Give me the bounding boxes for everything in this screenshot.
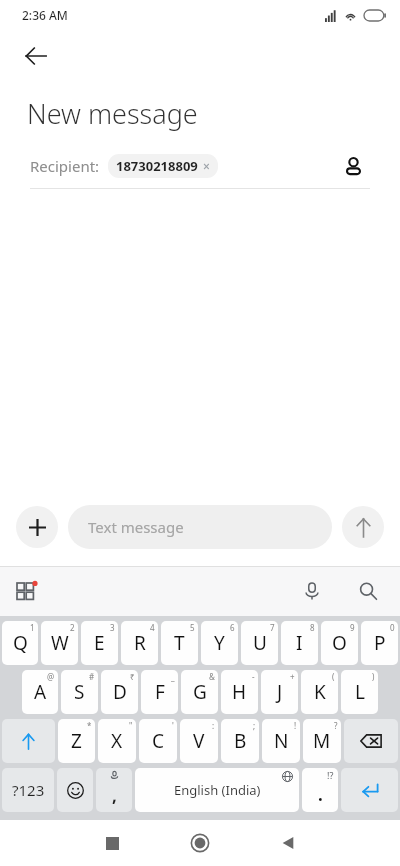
staticText: @ — [47, 671, 55, 682]
button[interactable]: K — [301, 670, 338, 714]
button[interactable]: U — [241, 621, 278, 665]
button[interactable]: , — [96, 768, 132, 812]
staticText: New message — [27, 95, 198, 132]
button[interactable]: X — [98, 719, 136, 763]
staticText: 5 — [190, 622, 195, 633]
button[interactable]: M — [303, 719, 341, 763]
staticText: - — [252, 671, 255, 682]
button[interactable]: Q — [2, 621, 38, 665]
button[interactable]: Text message — [68, 505, 332, 549]
staticText: , — [112, 784, 117, 807]
button[interactable]: T — [161, 621, 198, 665]
staticText: ' — [172, 720, 174, 731]
staticText: 1 — [30, 622, 35, 633]
staticText: 4 — [150, 622, 155, 633]
staticText: P — [374, 630, 386, 656]
staticText: Y — [214, 630, 225, 656]
staticText: E — [94, 630, 105, 656]
button[interactable]: 18730218809 — [108, 154, 218, 178]
staticText: × — [203, 158, 210, 174]
staticText: W — [51, 630, 69, 656]
staticText: # — [89, 671, 95, 682]
button[interactable]: English (India) — [135, 768, 299, 812]
staticText: ( — [332, 671, 335, 682]
button[interactable]: E — [81, 621, 118, 665]
button[interactable]: Voice input — [294, 573, 330, 609]
staticText: M — [313, 728, 331, 754]
staticText: T — [174, 630, 185, 656]
staticText: " — [129, 720, 133, 731]
button[interactable]: L — [341, 670, 378, 714]
button[interactable]: Backspace — [344, 719, 398, 763]
staticText: D — [113, 679, 127, 705]
button[interactable]: Y — [201, 621, 238, 665]
staticText: _ — [171, 671, 175, 682]
button[interactable]: I — [281, 621, 318, 665]
button[interactable]: R — [121, 621, 158, 665]
button[interactable]: H — [221, 670, 258, 714]
button[interactable]: Send — [342, 506, 384, 548]
staticText: ₹ — [130, 671, 135, 682]
staticText: R — [134, 630, 146, 656]
button[interactable]: A — [22, 670, 58, 714]
button[interactable]: Keyboard menu — [8, 572, 46, 610]
staticText: Q — [13, 630, 28, 656]
staticText: 3 — [110, 622, 115, 633]
button[interactable]: Home — [178, 821, 222, 865]
staticText: 18730218809 — [116, 157, 198, 175]
staticText: C — [152, 728, 165, 754]
button[interactable]: J — [261, 670, 298, 714]
button[interactable]: Shift — [2, 719, 55, 763]
staticText: A — [34, 679, 47, 705]
staticText: U — [253, 630, 267, 656]
staticText: 2 — [70, 622, 75, 633]
staticText: L — [355, 679, 365, 705]
staticText: 9 — [350, 622, 355, 633]
staticText: V — [193, 728, 205, 754]
button[interactable]: ?123 — [2, 768, 54, 812]
staticText: Recipient: — [30, 156, 100, 176]
button[interactable]: Back — [14, 34, 58, 78]
button[interactable]: Enter — [341, 768, 398, 812]
button[interactable]: Search — [350, 573, 386, 609]
staticText: I — [296, 630, 303, 656]
staticText: X — [111, 728, 123, 754]
staticText: Z — [71, 728, 82, 754]
staticText: S — [74, 679, 85, 705]
button[interactable]: Contacts — [336, 149, 370, 183]
button[interactable]: G — [181, 670, 218, 714]
button[interactable]: V — [180, 719, 218, 763]
staticText: F — [155, 679, 165, 705]
button[interactable]: Z — [58, 719, 95, 763]
button[interactable]: . — [302, 768, 338, 812]
staticText: K — [314, 679, 326, 705]
staticText: J — [277, 679, 283, 705]
staticText: B — [234, 728, 247, 754]
button[interactable]: N — [262, 719, 300, 763]
button[interactable]: P — [361, 621, 398, 665]
button[interactable]: O — [321, 621, 358, 665]
staticText: English (India) — [174, 781, 261, 799]
staticText: O — [332, 630, 347, 656]
button[interactable]: W — [41, 621, 78, 665]
staticText: 6 — [230, 622, 235, 633]
staticText: : — [212, 720, 215, 731]
button[interactable]: Emoji — [57, 768, 93, 812]
button[interactable]: C — [139, 719, 177, 763]
staticText: !? — [327, 769, 334, 781]
staticText: G — [193, 679, 207, 705]
button[interactable]: Back — [266, 821, 310, 865]
button[interactable]: S — [61, 670, 98, 714]
button[interactable]: Recents — [90, 821, 134, 865]
button[interactable]: B — [221, 719, 259, 763]
staticText: N — [274, 728, 289, 754]
staticText: 2:36 AM — [22, 7, 68, 23]
button[interactable]: D — [101, 670, 138, 714]
staticText: * — [87, 720, 92, 731]
button[interactable]: F — [141, 670, 178, 714]
button[interactable]: Add attachment — [16, 506, 58, 548]
staticText: 8 — [310, 622, 315, 633]
staticText: ; — [253, 720, 256, 731]
staticText: + — [290, 671, 295, 682]
staticText: ) — [372, 671, 375, 682]
